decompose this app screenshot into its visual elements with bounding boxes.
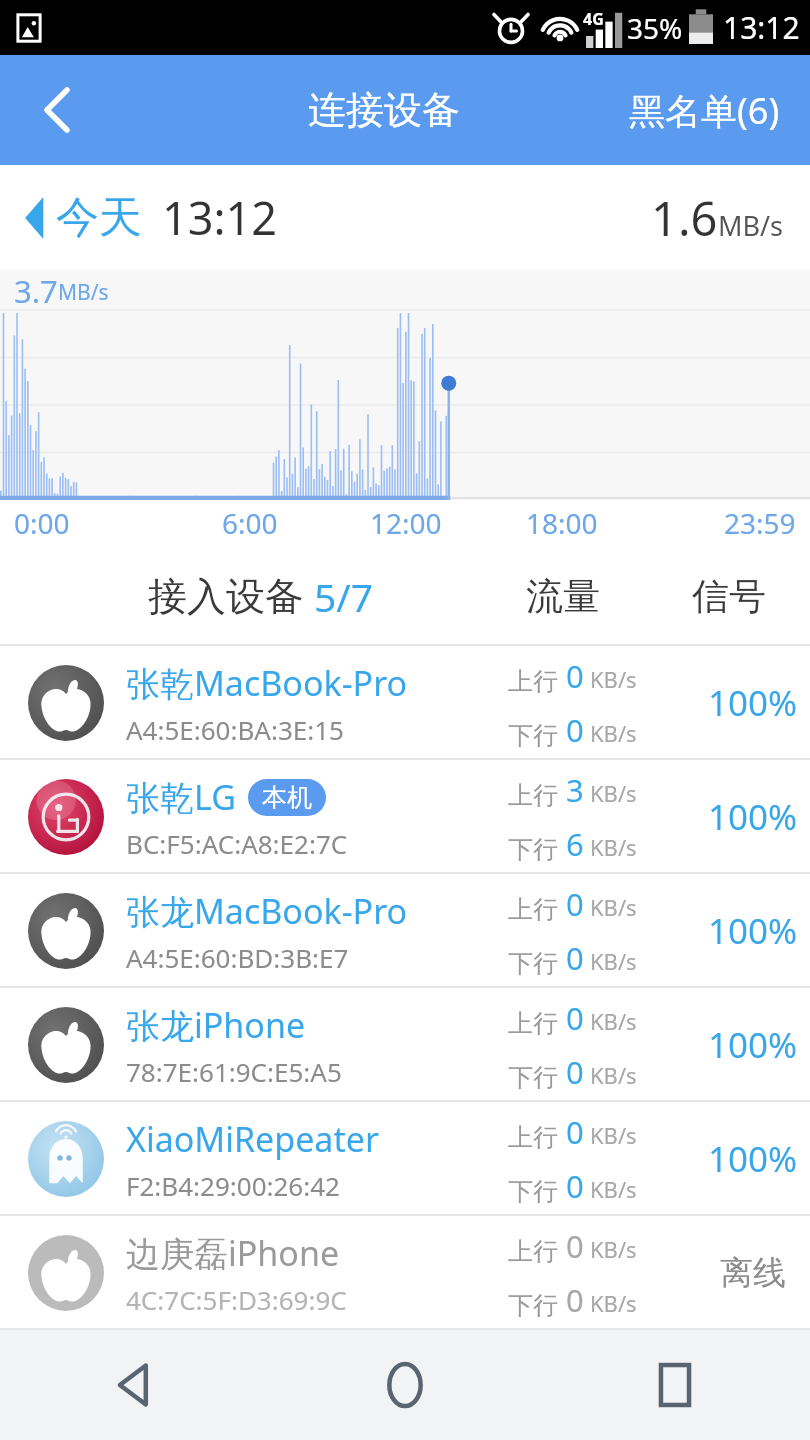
staticText: 100% (708, 793, 798, 841)
staticText: A4:5E:60:BA:3E:15 (126, 712, 344, 747)
staticText: 0 (566, 1165, 584, 1207)
staticText: 信号 (692, 573, 766, 620)
button[interactable]: Back (0, 1330, 270, 1440)
staticText: 18:00 (526, 504, 598, 542)
staticText: 100% (708, 1135, 798, 1183)
staticText: 0 (566, 1225, 584, 1267)
staticText: KB/s (590, 1234, 637, 1264)
staticText: 上行 (508, 894, 558, 925)
button[interactable]: Recents (540, 1330, 810, 1440)
staticText: 13:12 (723, 7, 800, 48)
staticText: 13:12 (162, 187, 278, 248)
button[interactable]: 边庚磊iPhone (0, 1216, 810, 1330)
button[interactable]: 张乾LG (0, 760, 810, 874)
staticText: 3 (566, 769, 584, 811)
staticText: 上行 (508, 1008, 558, 1039)
button[interactable]: 张乾MacBook-Pro (0, 646, 810, 760)
staticText: 张乾MacBook-Pro (126, 660, 408, 706)
staticText: 100% (708, 1021, 798, 1069)
button[interactable]: 黑名单(6) (599, 55, 810, 165)
button[interactable]: XiaoMiRepeater (0, 1102, 810, 1216)
staticText: 0 (566, 709, 584, 751)
staticText: 100% (708, 679, 798, 727)
staticText: 下行 (508, 834, 558, 865)
staticText: 上行 (508, 666, 558, 697)
staticText: 上行 (508, 780, 558, 811)
button[interactable]: Home (270, 1330, 540, 1440)
staticText: 78:7E:61:9C:E5:A5 (126, 1054, 342, 1089)
staticText: 张龙iPhone (126, 1002, 306, 1048)
staticText: KB/s (590, 1006, 637, 1036)
staticText: KB/s (590, 1120, 637, 1150)
staticText: 张乾LG (126, 774, 236, 820)
staticText: 35% (627, 9, 683, 47)
staticText: KB/s (590, 664, 637, 694)
staticText: KB/s (590, 718, 637, 748)
staticText: 6:00 (222, 504, 278, 542)
staticText: 0 (566, 937, 584, 979)
staticText: KB/s (590, 778, 637, 808)
staticText: 今天 (56, 191, 142, 245)
staticText: F2:B4:29:00:26:42 (126, 1168, 340, 1203)
staticText: 下行 (508, 1176, 558, 1207)
staticText: 100% (708, 907, 798, 955)
staticText: XiaoMiRepeater (126, 1116, 379, 1162)
staticText: KB/s (590, 832, 637, 862)
staticText: 0 (566, 655, 584, 697)
staticText: 3.7 (14, 270, 58, 310)
staticText: 离线 (720, 1252, 786, 1294)
staticText: 0 (566, 997, 584, 1039)
button[interactable]: 张龙iPhone (0, 988, 810, 1102)
staticText: 下行 (508, 948, 558, 979)
staticText: 接入设备 (148, 572, 304, 621)
staticText: 边庚磊iPhone (126, 1230, 340, 1276)
staticText: 0 (566, 1051, 584, 1093)
staticText: 4G (583, 8, 604, 30)
staticText: KB/s (590, 1174, 637, 1204)
staticText: 张龙MacBook-Pro (126, 888, 408, 934)
staticText: 23:59 (724, 504, 796, 542)
staticText: 上行 (508, 1122, 558, 1153)
staticText: MB/s (718, 207, 784, 244)
button[interactable]: Back (0, 55, 115, 165)
staticText: 0 (566, 883, 584, 925)
staticText: 0 (566, 1279, 584, 1321)
button[interactable]: 今天 (22, 187, 278, 248)
staticText: 4C:7C:5F:D3:69:9C (126, 1282, 347, 1317)
staticText: 本机 (262, 782, 312, 813)
staticText: 下行 (508, 720, 558, 751)
staticText: 下行 (508, 1290, 558, 1321)
staticText: KB/s (590, 892, 637, 922)
staticText: 上行 (508, 1236, 558, 1267)
staticText: 0:00 (14, 504, 70, 542)
button[interactable]: 张龙MacBook-Pro (0, 874, 810, 988)
staticText: KB/s (590, 946, 637, 976)
staticText: 5/7 (314, 570, 374, 623)
staticText: A4:5E:60:BD:3B:E7 (126, 940, 349, 975)
staticText: 12:00 (370, 504, 442, 542)
staticText: 连接设备 (308, 86, 460, 134)
staticText: KB/s (590, 1288, 637, 1318)
staticText: 1.6 (651, 186, 718, 250)
staticText: 黑名单(6) (629, 86, 780, 135)
staticText: MB/s (58, 278, 109, 307)
staticText: KB/s (590, 1060, 637, 1090)
staticText: 下行 (508, 1062, 558, 1093)
staticText: BC:F5:AC:A8:E2:7C (126, 826, 348, 861)
staticText: 流量 (526, 573, 600, 620)
staticText: 6 (566, 823, 584, 865)
staticText: 0 (566, 1111, 584, 1153)
